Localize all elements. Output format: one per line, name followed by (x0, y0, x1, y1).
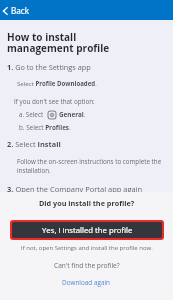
button[interactable]: Back (0, 2, 34, 19)
staticText: 1. Go to the Settings app (7, 62, 91, 72)
staticText: If not, open Settings and install the pr… (21, 244, 153, 252)
staticText: General. (59, 110, 86, 119)
staticText: Download again (62, 278, 111, 287)
staticText: If you don't see that option: (14, 97, 95, 106)
other: Back (3, 7, 8, 15)
staticText: Can't find the profile? (54, 261, 120, 270)
staticText: 2. Select Install (7, 139, 61, 149)
staticText: 3. Open the Company Portal app again (7, 184, 143, 194)
staticText: Select Profile Downloaded. (17, 79, 97, 87)
staticText: management profile (7, 41, 110, 55)
staticText: Back (11, 5, 30, 16)
staticText: b. Select Profiles. (19, 123, 71, 132)
staticText: Did you install the profile? (39, 198, 135, 208)
staticText: a. Select (19, 110, 44, 119)
staticText: How to install (7, 30, 77, 44)
button[interactable]: Download again (62, 278, 111, 287)
staticText: Yes, I installed the profile (42, 225, 133, 236)
staticText: Follow the on-screen instructions to com… (17, 157, 162, 175)
button[interactable]: Yes, I installed the profile (12, 222, 162, 238)
